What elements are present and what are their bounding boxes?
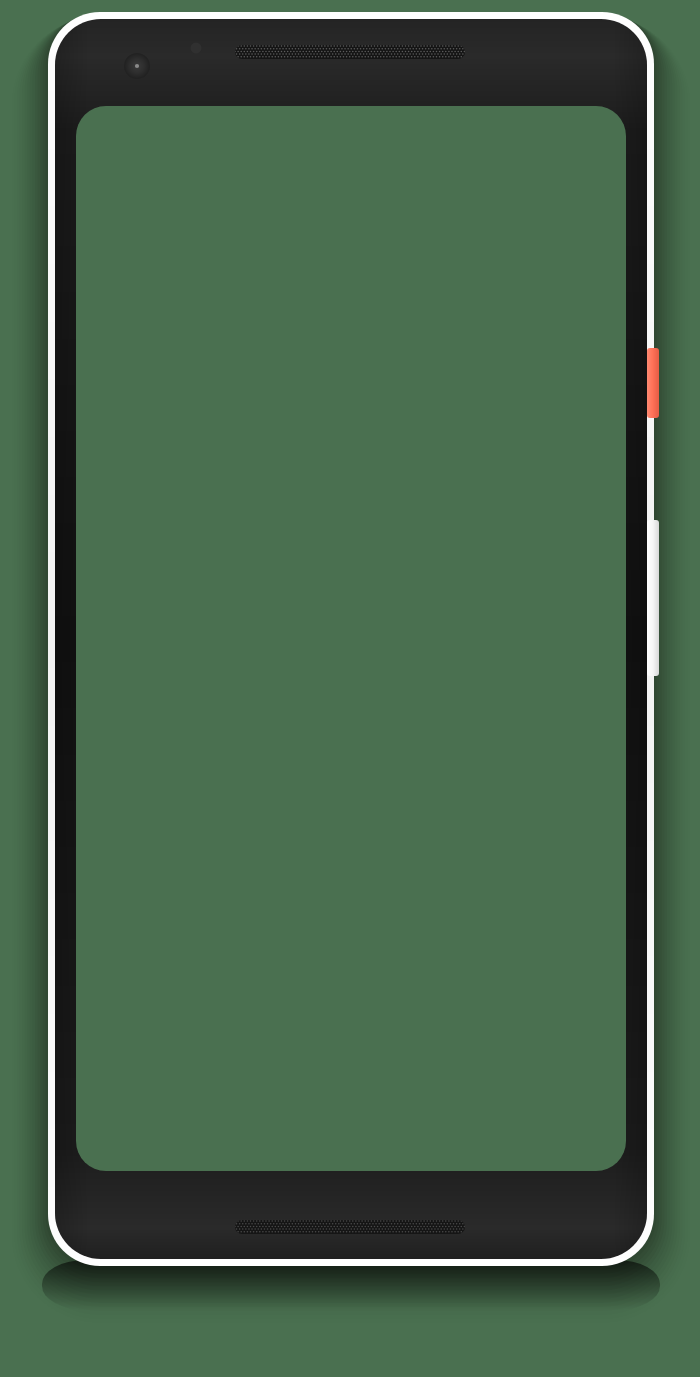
button[interactable]: Pixel phone device frame preview [0,0,700,1377]
